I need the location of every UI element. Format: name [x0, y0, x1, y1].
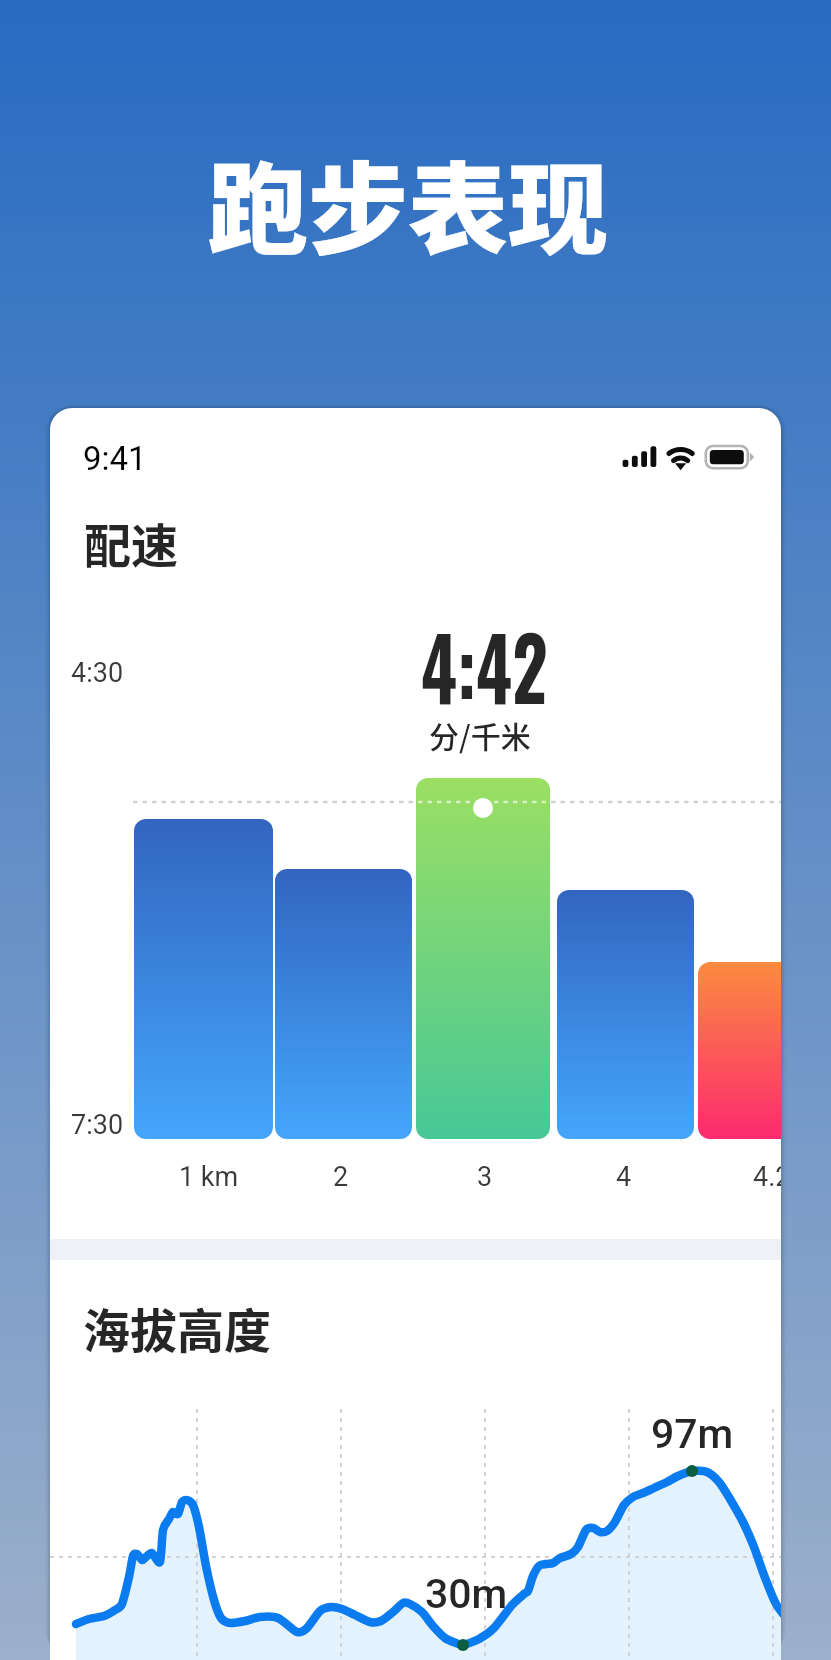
- button[interactable]: Signal, Wi-Fi and battery status: [615, 436, 781, 486]
- staticText: 9:41: [83, 439, 147, 478]
- staticText: 4: [616, 1161, 632, 1193]
- button[interactable]: 跑步表现: [0, 130, 823, 256]
- staticText: 30m: [425, 1570, 508, 1618]
- staticText: 4:30: [71, 657, 124, 689]
- staticText: 4.2: [753, 1161, 781, 1193]
- staticText: 4:42: [421, 601, 548, 728]
- staticText: 3: [477, 1161, 493, 1193]
- staticText: 分/千米: [429, 713, 531, 756]
- staticText: 2: [333, 1161, 349, 1193]
- staticText: 7:30: [71, 1109, 124, 1141]
- staticText: 海拔高度: [83, 1293, 271, 1361]
- staticText: 跑步表现: [208, 130, 608, 256]
- staticText: 97m: [651, 1410, 734, 1458]
- staticText: 1 km: [179, 1161, 239, 1193]
- staticText: 配速: [84, 508, 178, 576]
